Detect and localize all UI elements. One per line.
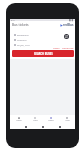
staticText: Bus tickets <box>12 23 29 27</box>
staticText: ▌▌▌ <box>69 19 74 21</box>
button[interactable]: Tomorrow <box>62 46 74 49</box>
staticText: Trips <box>33 119 38 122</box>
button[interactable]: Today <box>53 46 60 49</box>
button[interactable]: Home <box>41 125 44 128</box>
staticText: SEARCH BUSES <box>34 52 53 56</box>
button[interactable]: Offers <box>43 115 59 124</box>
staticText: Today <box>53 46 60 49</box>
staticText: 9:41 <box>11 19 15 21</box>
staticText: Chennai <box>17 38 27 41</box>
button[interactable]: Chennai <box>14 37 74 42</box>
staticText: Home <box>16 119 22 122</box>
staticText: Help <box>65 119 70 122</box>
button[interactable]: 02 Jan, Thu <box>14 42 74 47</box>
staticText: Tomorrow <box>62 46 74 49</box>
button[interactable]: Back <box>24 125 27 128</box>
button[interactable]: Bangalore <box>14 32 74 37</box>
button[interactable]: Home <box>10 115 27 124</box>
button[interactable]: Swap source and destination <box>64 34 69 39</box>
button[interactable]: SEARCH BUSES <box>12 50 74 57</box>
staticText: Bangalore <box>17 33 29 36</box>
button[interactable]: Recent apps <box>58 125 61 128</box>
staticText: 02 Jan, Thu <box>17 43 30 46</box>
button[interactable]: Help <box>59 115 75 124</box>
button[interactable]: Trips <box>27 115 43 124</box>
staticText: redBus <box>63 23 74 27</box>
staticText: Offers <box>48 119 54 122</box>
